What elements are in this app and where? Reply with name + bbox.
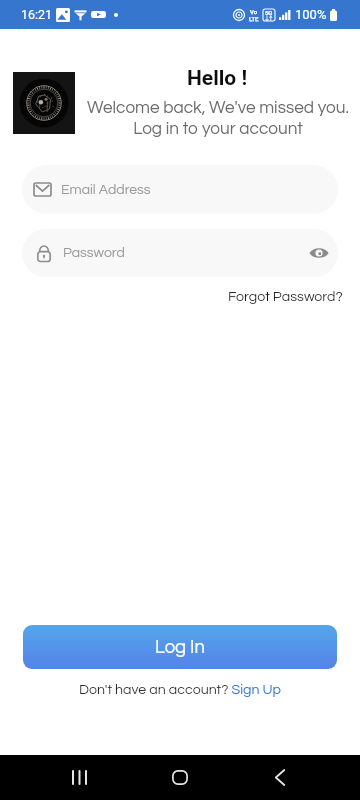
button[interactable]: Recent apps (55, 755, 103, 800)
staticText: Password (63, 246, 125, 260)
staticText: Email Address (61, 183, 151, 197)
button[interactable]: Don't have an account? Sign Up (75, 680, 285, 699)
staticText: Forgot Password? (228, 289, 343, 304)
button[interactable]: Show password (306, 243, 332, 263)
button[interactable]: Home (156, 755, 204, 800)
button[interactable]: Email Address (22, 165, 338, 214)
staticText: Vo (250, 8, 258, 15)
button[interactable]: Back (256, 755, 304, 800)
staticText: Log in to your account (133, 120, 303, 138)
button[interactable]: Password (22, 229, 338, 277)
staticText: LTE (249, 15, 259, 22)
staticText: Hello ! (187, 66, 248, 91)
staticText: Welcome back, We've missed you. (87, 99, 349, 117)
staticText: 5G (265, 9, 273, 16)
button[interactable]: Forgot Password? (226, 287, 345, 306)
staticText: 100% (295, 7, 327, 22)
staticText: 16:21 (21, 7, 53, 22)
staticText: Don't have an account? Sign Up (79, 682, 281, 697)
button[interactable]: Log In (23, 625, 337, 669)
staticText: Log In (155, 638, 205, 657)
